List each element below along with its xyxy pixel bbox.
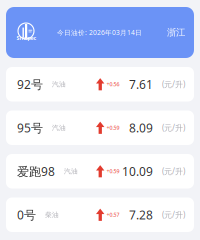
staticText: 柴油: [45, 211, 59, 219]
staticText: (元/升): [162, 209, 185, 220]
staticText: 汽油: [52, 124, 66, 132]
staticText: (元/升): [162, 79, 185, 89]
staticText: +0.59: [106, 168, 119, 175]
staticText: 爱跑98: [17, 163, 55, 179]
staticText: 8.09: [129, 120, 153, 136]
button[interactable]: 爱跑98: [6, 154, 194, 188]
button[interactable]: 0号: [6, 197, 194, 232]
staticText: 7.28: [129, 207, 153, 223]
staticText: 95号: [17, 120, 43, 136]
staticText: 10.09: [122, 163, 153, 179]
button[interactable]: 95号: [6, 110, 194, 145]
staticText: 7.61: [129, 76, 153, 92]
staticText: +0.57: [106, 211, 119, 218]
staticText: 0号: [17, 207, 36, 223]
staticText: 92号: [17, 76, 43, 92]
button[interactable]: Sinopec: [6, 7, 194, 58]
staticText: 汽油: [64, 167, 78, 175]
staticText: (元/升): [162, 122, 185, 133]
button[interactable]: 92号: [6, 67, 194, 101]
staticText: 今日油价: 2026年03月14日: [57, 28, 142, 37]
staticText: 浙江: [167, 27, 185, 38]
staticText: (元/升): [162, 166, 185, 176]
staticText: Sinopec: [16, 34, 36, 41]
staticText: 汽油: [52, 80, 66, 88]
staticText: +0.56: [106, 81, 119, 88]
staticText: +0.59: [106, 124, 119, 131]
